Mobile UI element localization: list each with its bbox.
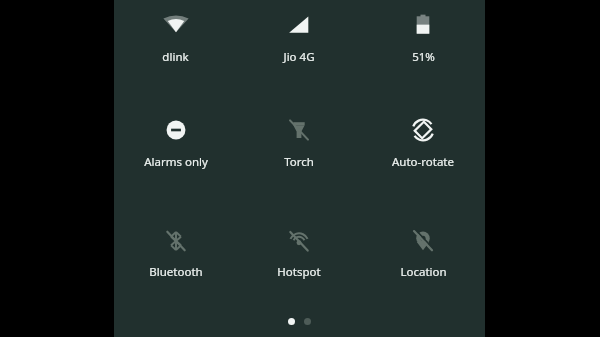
staticText: Torch [284,154,314,170]
button[interactable]: Wi-Fi dlink [114,6,237,69]
button[interactable]: Auto-rotate on [361,111,485,174]
staticText: Hotspot [277,264,321,280]
staticText: dlink [162,49,189,65]
button[interactable]: Do not disturb alarms only [114,111,237,174]
button[interactable]: Bluetooth off [114,222,237,284]
button[interactable]: Mobile data Jio 4G [237,6,361,69]
staticText: 51% [412,49,435,65]
staticText: Alarms only [144,154,208,170]
button[interactable]: Hotspot off [237,222,361,284]
staticText: Auto-rotate [392,154,454,170]
staticText: Bluetooth [149,264,203,280]
button[interactable]: Battery 51 percent [361,6,485,69]
button[interactable]: Page 2 [304,318,311,325]
button[interactable]: Torch off [237,111,361,174]
staticText: Location [400,264,447,280]
button[interactable]: Location off [361,222,485,284]
button[interactable]: Page 1 [288,318,295,325]
staticText: Jio 4G [283,49,315,65]
